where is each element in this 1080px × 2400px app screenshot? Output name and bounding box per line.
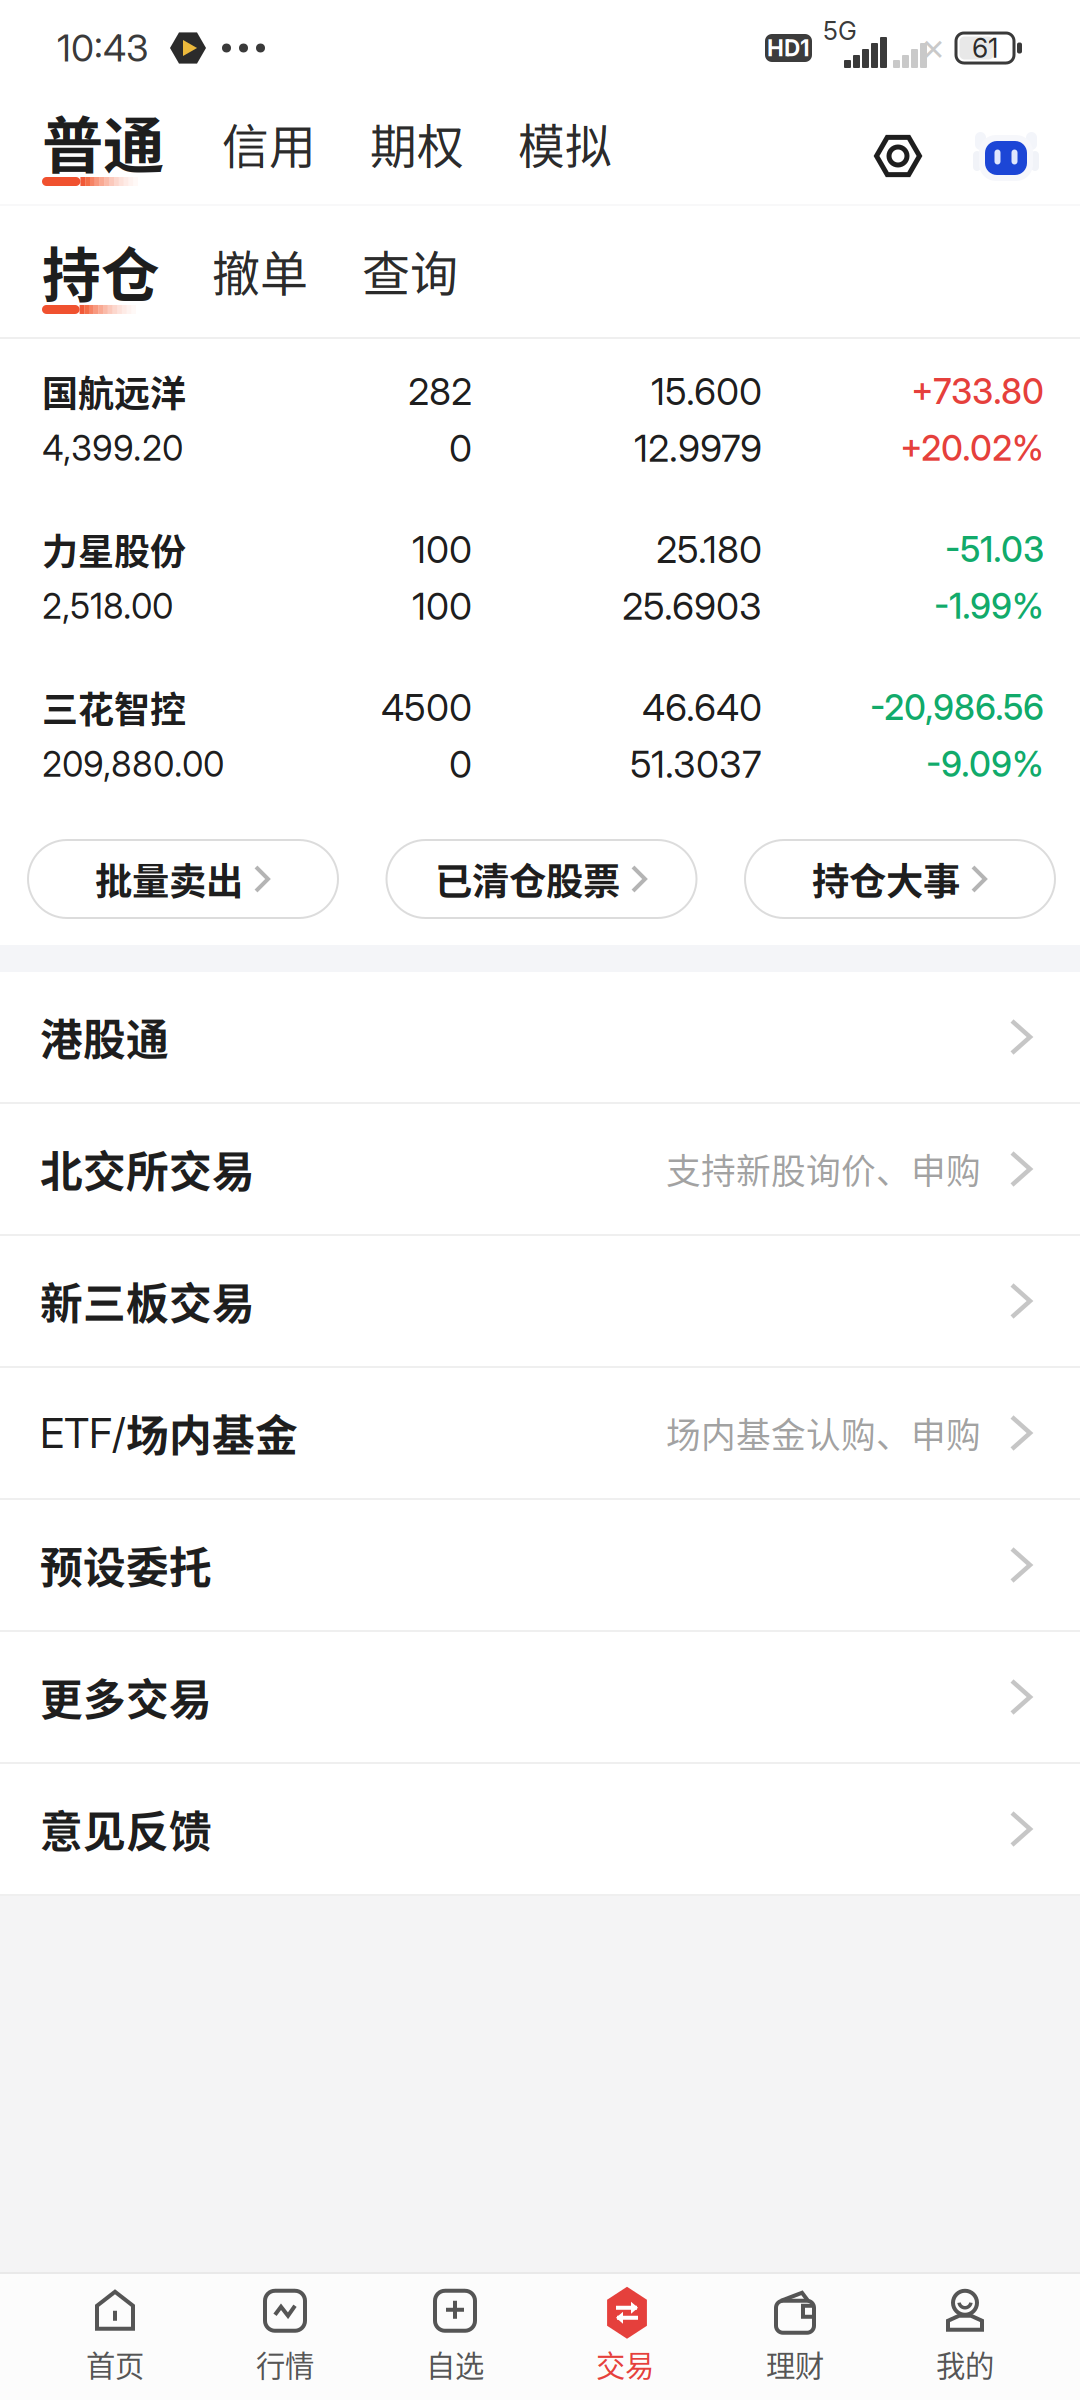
staticText: 北交所交易: [40, 1138, 255, 1200]
button[interactable]: 模拟: [518, 109, 612, 186]
staticText: HD1: [767, 34, 810, 62]
staticText: 支持新股询价、申购: [666, 1144, 981, 1194]
staticText: 4500: [381, 685, 472, 730]
button[interactable]: 设置: [874, 132, 922, 186]
staticText: 0: [449, 425, 472, 471]
staticText: 意见反馈: [40, 1798, 212, 1860]
button[interactable]: 持仓大事: [745, 840, 1055, 918]
staticText: 209,880.00: [42, 743, 224, 785]
staticText: 场内基金: [126, 1402, 298, 1464]
button[interactable]: 我的: [880, 2277, 1050, 2397]
staticText: -9.09%: [926, 743, 1044, 785]
staticText: 自选: [426, 2343, 484, 2385]
button[interactable]: 已清仓股票: [386, 840, 696, 918]
staticText: 5G: [823, 15, 857, 46]
staticText: 场内基金认购、申购: [666, 1408, 981, 1458]
staticText: 期权: [370, 109, 464, 177]
staticText: 普通: [42, 97, 164, 186]
button[interactable]: 交易: [540, 2277, 710, 2397]
staticText: 批量卖出: [95, 852, 243, 906]
staticText: -51.03: [945, 528, 1044, 570]
staticText: ETF/: [40, 1408, 126, 1458]
staticText: 2,518.00: [42, 585, 173, 627]
staticText: ✕: [921, 33, 946, 67]
staticText: 持仓大事: [812, 852, 960, 906]
staticText: 已清仓股票: [435, 852, 620, 906]
button[interactable]: 行情: [200, 2277, 370, 2397]
button[interactable]: 信用: [222, 109, 316, 186]
button[interactable]: 批量卖出: [28, 840, 338, 918]
staticText: 港股通: [40, 1006, 169, 1068]
staticText: 理财: [766, 2343, 824, 2385]
staticText: +20.02%: [900, 427, 1044, 469]
staticText: 力星股份: [42, 523, 186, 575]
staticText: 100: [412, 583, 472, 629]
button[interactable]: 新三板交易: [0, 1236, 1080, 1368]
button[interactable]: 撤单: [212, 235, 308, 314]
button[interactable]: 首页: [30, 2277, 200, 2397]
button[interactable]: 力星股份: [0, 497, 1080, 655]
staticText: 25.180: [656, 527, 762, 572]
staticText: +733.80: [911, 370, 1044, 412]
staticText: 61: [972, 32, 998, 64]
staticText: 行情: [256, 2343, 314, 2385]
button[interactable]: 普通: [42, 97, 164, 186]
staticText: 我的: [936, 2343, 994, 2385]
staticText: 10:43: [57, 25, 149, 71]
staticText: 100: [412, 527, 472, 572]
button[interactable]: 智能助手: [974, 132, 1038, 186]
staticText: -1.99%: [934, 585, 1044, 627]
staticText: 15.600: [651, 369, 762, 414]
staticText: 12.9979: [634, 425, 762, 471]
button[interactable]: 查询: [362, 235, 458, 314]
button[interactable]: 更多交易: [0, 1632, 1080, 1764]
staticText: 预设委托: [40, 1534, 212, 1596]
button[interactable]: 国航远洋: [0, 339, 1080, 497]
staticText: 51.3037: [630, 741, 762, 787]
staticText: 三花智控: [42, 681, 186, 733]
staticText: 首页: [86, 2343, 144, 2385]
staticText: 更多交易: [40, 1666, 212, 1728]
button[interactable]: 自选: [370, 2277, 540, 2397]
button[interactable]: 预设委托: [0, 1500, 1080, 1632]
button[interactable]: 北交所交易: [0, 1104, 1080, 1236]
staticText: 国航远洋: [42, 365, 186, 417]
button[interactable]: 港股通: [0, 972, 1080, 1104]
staticText: 46.640: [642, 685, 762, 730]
staticText: 撤单: [212, 235, 308, 305]
button[interactable]: 理财: [710, 2277, 880, 2397]
staticText: 4,399.20: [42, 427, 183, 469]
button[interactable]: 三花智控: [0, 655, 1080, 813]
button[interactable]: 意见反馈: [0, 1764, 1080, 1896]
staticText: 282: [408, 369, 472, 414]
staticText: 25.6903: [622, 583, 762, 629]
staticText: 模拟: [518, 109, 612, 177]
staticText: 查询: [362, 235, 458, 305]
staticText: 新三板交易: [40, 1270, 255, 1332]
staticText: 0: [449, 741, 472, 787]
staticText: 信用: [222, 109, 316, 177]
staticText: 持仓: [42, 229, 160, 314]
button[interactable]: ETF/: [0, 1368, 1080, 1500]
staticText: -20,986.56: [870, 686, 1044, 728]
button[interactable]: 期权: [370, 109, 464, 186]
staticText: 交易: [596, 2343, 654, 2385]
button[interactable]: 持仓: [42, 229, 160, 314]
